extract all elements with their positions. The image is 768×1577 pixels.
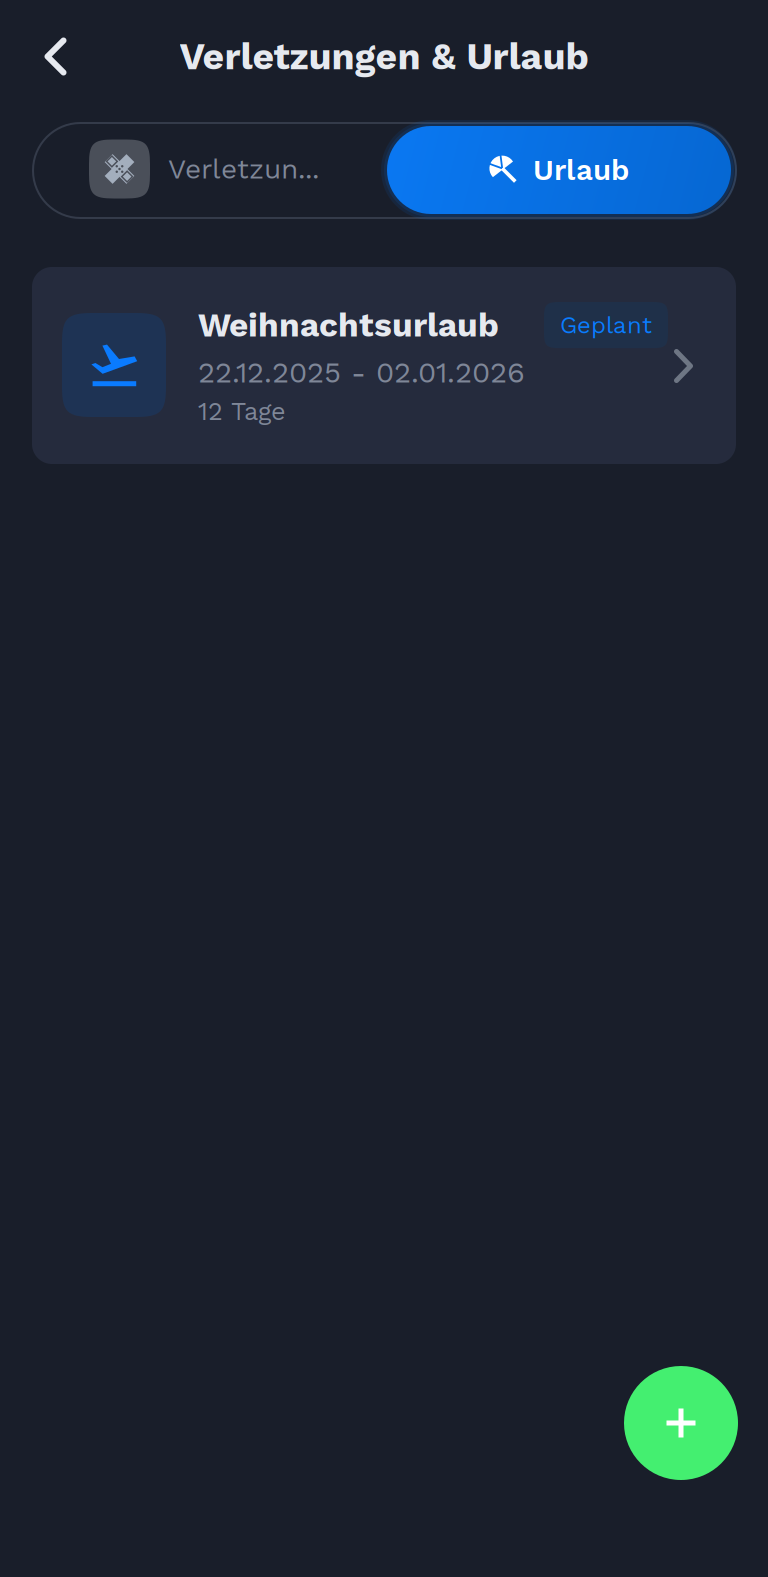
- button[interactable]: Verletzun...: [33, 123, 387, 215]
- staticText: Urlaub: [533, 153, 629, 187]
- staticText: Geplant: [560, 311, 652, 339]
- staticText: Verletzungen & Urlaub: [179, 35, 588, 78]
- button[interactable]: Weihnachtsurlaub: [32, 267, 736, 464]
- staticText: 22.12.2025 - 02.01.2026: [198, 355, 525, 390]
- button[interactable]: Urlaub: [387, 126, 731, 214]
- staticText: 12 Tage: [198, 397, 286, 426]
- button[interactable]: Add: [624, 1366, 738, 1480]
- button[interactable]: Back: [0, 14, 111, 98]
- staticText: Verletzun...: [168, 153, 319, 185]
- staticText: Weihnachtsurlaub: [198, 305, 499, 345]
